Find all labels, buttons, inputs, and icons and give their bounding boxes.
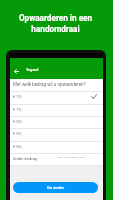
staticText: Ga verder	[47, 185, 65, 190]
button[interactable]: Ander bedrag	[10, 154, 103, 165]
staticText: Min. € 5,- en max. € 100,-	[58, 156, 86, 159]
button[interactable]: € 50,-	[10, 142, 103, 153]
staticText: € 20,-	[13, 119, 23, 124]
staticText: € 15,-	[13, 107, 23, 112]
staticText: € 10,-	[13, 94, 23, 99]
staticText: € 50,-	[13, 144, 23, 149]
button[interactable]: € 30,-	[10, 129, 103, 141]
button[interactable]: € 10,-	[10, 92, 103, 104]
button[interactable]: € 15,-	[10, 105, 103, 116]
staticText: Ander bedrag	[13, 156, 37, 161]
button[interactable]: Terug	[13, 68, 20, 75]
staticText: Opwaarderen in een handomdraai	[0, 13, 112, 34]
staticText: € 30,-	[13, 131, 23, 136]
button[interactable]: Ga verder	[13, 182, 98, 193]
staticText: Tegoed	[26, 68, 39, 72]
staticText: Met welk bedrag wil u opwaarderen?	[13, 82, 86, 87]
button[interactable]: € 20,-	[10, 117, 103, 128]
